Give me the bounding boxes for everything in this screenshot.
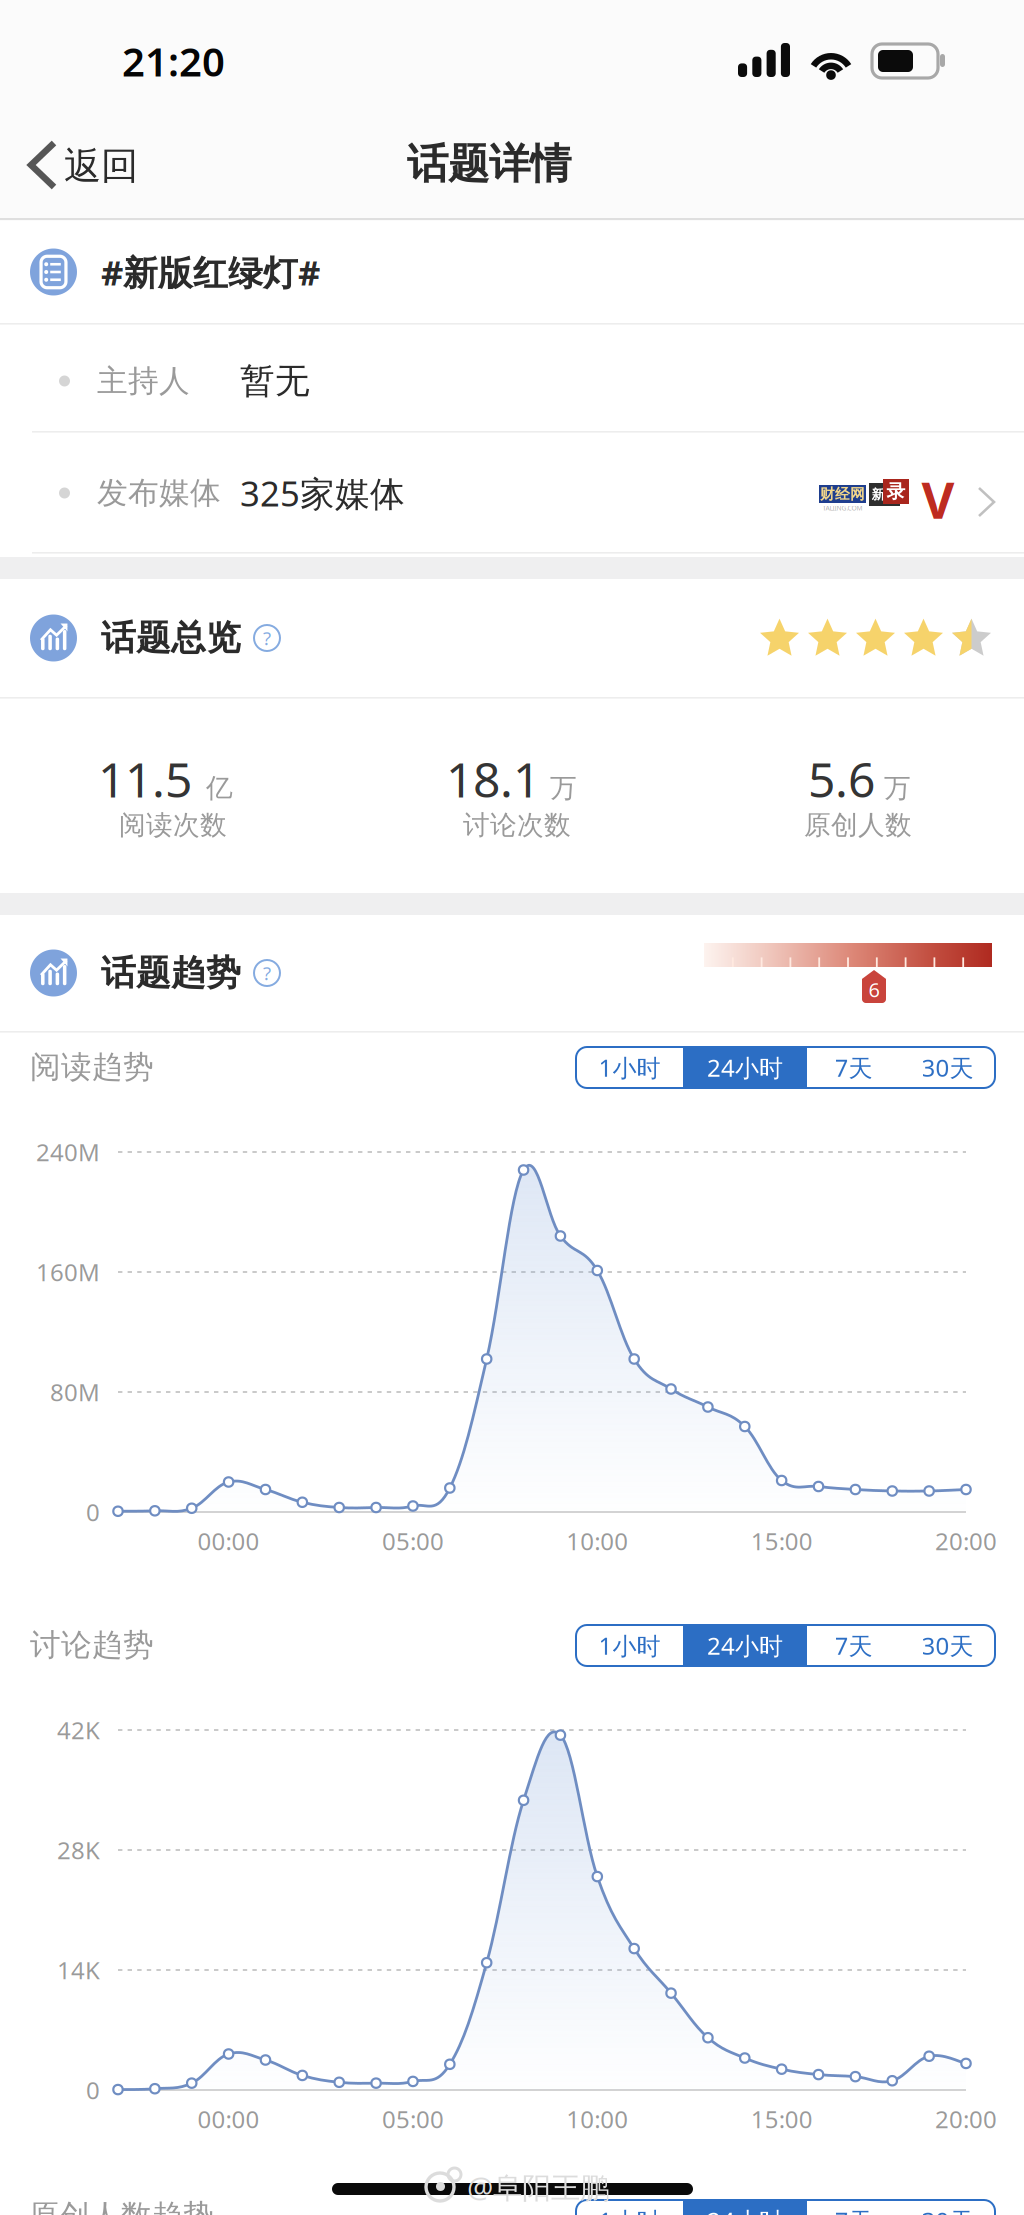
staticText: 录	[886, 480, 905, 503]
staticText: 返回	[64, 143, 138, 189]
staticText: V	[921, 465, 954, 533]
staticText: 325家媒体	[240, 470, 405, 516]
staticText: ?	[263, 626, 271, 650]
button[interactable]: 1小时	[576, 1047, 683, 1088]
staticText: 18.1	[446, 747, 540, 811]
button[interactable]: 1小时	[576, 2200, 683, 2215]
staticText: 24小时	[707, 1630, 783, 1661]
button[interactable]: 30天	[900, 2200, 995, 2215]
staticText: 42K	[57, 1714, 100, 1746]
staticText: 05:00	[382, 2103, 444, 2135]
staticText: 1小时	[598, 2205, 660, 2215]
staticText: 21:20	[122, 34, 225, 87]
staticText: 0	[86, 2074, 100, 2106]
staticText: 原创人数趋势	[28, 2197, 214, 2215]
staticText: 阅读次数	[119, 809, 227, 841]
staticText: 发布媒体	[97, 474, 221, 512]
staticText: 00:00	[198, 2103, 260, 2135]
button[interactable]: 7天	[807, 1625, 900, 1666]
staticText: 20:00	[935, 2103, 997, 2135]
button[interactable]: 24小时	[683, 1625, 807, 1666]
staticText: 14K	[57, 1954, 100, 1986]
staticText: 24小时	[707, 1052, 783, 1083]
button[interactable]: 24小时	[683, 2200, 807, 2215]
staticText: 5.6	[808, 747, 875, 811]
staticText: 10:00	[566, 1525, 628, 1557]
staticText: 万	[550, 772, 577, 804]
staticText: 1小时	[598, 1630, 660, 1661]
staticText: 28K	[57, 1834, 100, 1866]
staticText: 15:00	[751, 2103, 813, 2135]
button[interactable]: 说明	[254, 960, 280, 986]
staticText: #新版红绿灯#	[101, 249, 320, 295]
staticText: 05:00	[382, 1525, 444, 1557]
staticText: 话题详情	[407, 139, 571, 189]
staticText: 亿	[206, 772, 233, 804]
staticText: 30天	[921, 1630, 973, 1661]
staticText: 财经网	[820, 485, 865, 503]
staticText: 万	[884, 772, 911, 804]
staticText: 0	[86, 1496, 100, 1528]
button[interactable]: 1小时	[576, 1625, 683, 1666]
staticText: 30天	[921, 1052, 973, 1083]
button[interactable]: 发布媒体	[0, 433, 1024, 553]
staticText: 7天	[834, 1052, 872, 1083]
button[interactable]: 24小时	[683, 1047, 807, 1088]
staticText: 7天	[834, 1630, 872, 1661]
staticText: 80M	[50, 1376, 100, 1408]
staticText: 新浪	[871, 486, 897, 503]
staticText: 话题总览	[101, 617, 241, 659]
staticText: 15:00	[751, 1525, 813, 1557]
staticText: 话题趋势	[101, 952, 241, 994]
staticText: 讨论趋势	[30, 1626, 154, 1664]
staticText: 1小时	[598, 1052, 660, 1083]
staticText: 00:00	[198, 1525, 260, 1557]
staticText: 7天	[834, 2205, 872, 2215]
button[interactable]: 30天	[900, 1047, 995, 1088]
staticText: 主持人	[97, 362, 190, 400]
button[interactable]: 7天	[807, 2200, 900, 2215]
button[interactable]: 7天	[807, 1047, 900, 1088]
staticText: @阜阳王鹏	[467, 2167, 609, 2206]
staticText: 阅读趋势	[30, 1048, 154, 1086]
staticText: 24小时	[707, 2205, 783, 2215]
staticText: 20:00	[935, 1525, 997, 1557]
staticText: 原创人数	[804, 809, 912, 841]
button[interactable]: 返回	[0, 0, 230, 109]
staticText: 10:00	[566, 2103, 628, 2135]
staticText: 30天	[921, 2205, 973, 2215]
staticText: 暂无	[240, 360, 310, 402]
staticText: 240M	[36, 1136, 100, 1168]
staticText: 160M	[36, 1256, 100, 1288]
button[interactable]: #新版红绿灯#	[0, 221, 1024, 323]
button[interactable]: 说明	[254, 625, 280, 651]
staticText: ?	[263, 961, 271, 985]
button[interactable]: 30天	[900, 1625, 995, 1666]
staticText: TALIING.COM	[822, 504, 862, 512]
staticText: 6	[868, 976, 879, 1003]
staticText: 讨论次数	[463, 809, 571, 841]
staticText: 11.5	[98, 747, 192, 811]
